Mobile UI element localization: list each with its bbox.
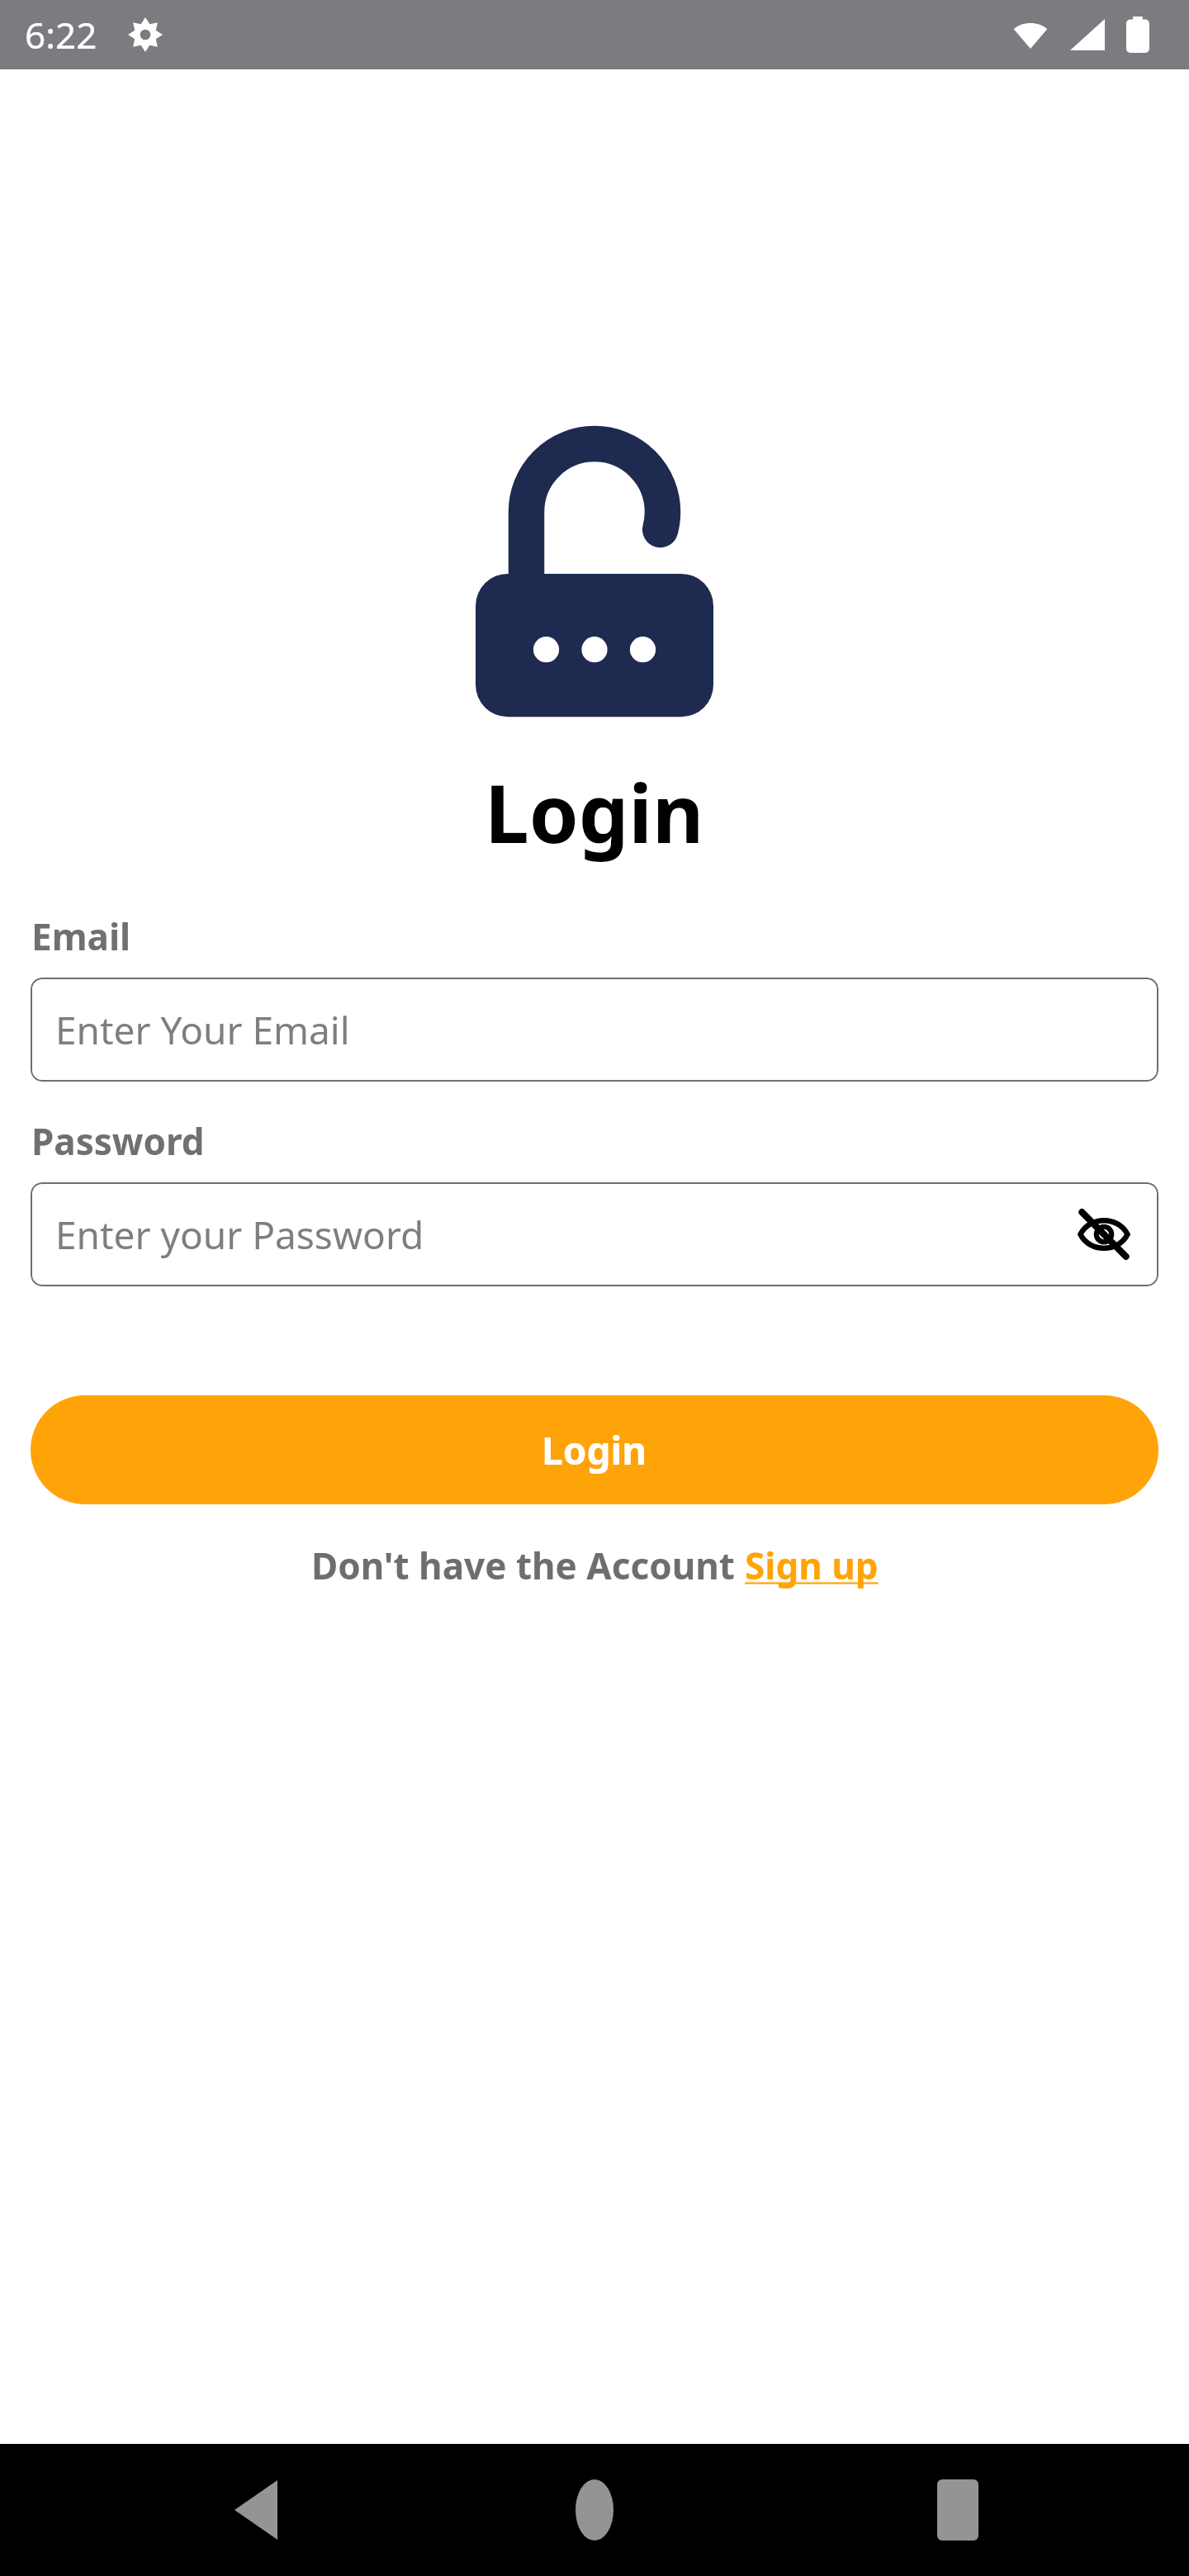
other: Settings [128,17,163,52]
staticText: Login [542,1424,647,1476]
staticText: Email [31,912,131,961]
staticText: Password [31,1116,205,1166]
staticText: Don't have the Account [311,1541,745,1590]
button[interactable]: Home [537,2452,652,2568]
button[interactable]: Recent apps [900,2452,1016,2568]
staticText: Enter your Password [55,1209,424,1261]
button[interactable]: Login [31,1395,1158,1504]
staticText: 6:22 [25,10,97,59]
staticText: Login [485,758,704,866]
button[interactable]: Toggle password visibility [1066,1196,1142,1272]
button[interactable]: Don't have the Account [311,1541,879,1590]
button[interactable]: Enter Your Email [31,978,1158,1082]
staticText: Enter Your Email [55,1004,350,1056]
button[interactable]: Back [198,2452,314,2568]
staticText: Sign up [745,1541,879,1590]
button[interactable]: Enter your Password [31,1182,1158,1286]
